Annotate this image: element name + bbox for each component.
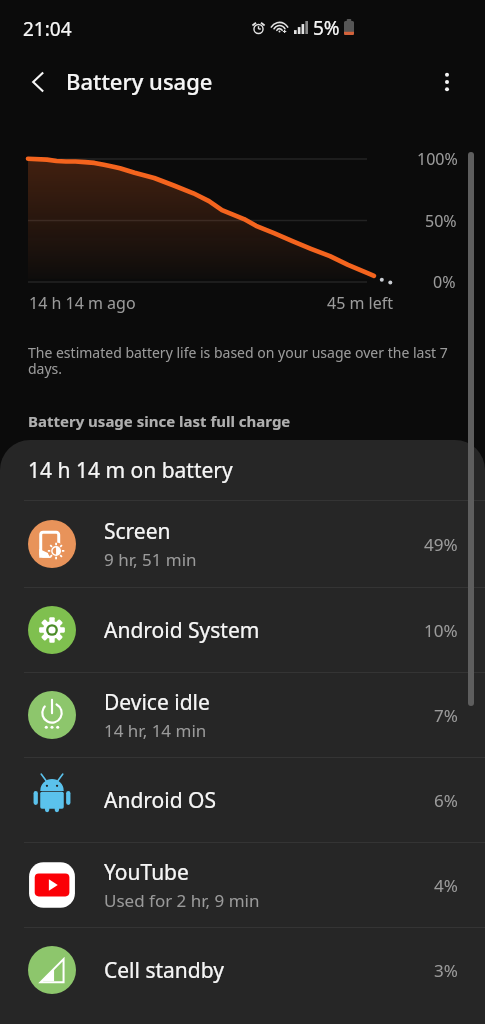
staticText: 3%: [434, 959, 458, 982]
button[interactable]: Cell standby: [0, 928, 485, 1012]
staticText: Cell standby: [104, 956, 224, 985]
staticText: 14 h 14 m on battery: [28, 456, 233, 485]
staticText: 7%: [434, 704, 458, 727]
staticText: Battery usage: [66, 66, 213, 96]
button[interactable]: Device idle: [0, 673, 485, 757]
staticText: 45 m left: [327, 292, 394, 314]
staticText: 0%: [433, 271, 456, 293]
staticText: 10%: [424, 619, 458, 642]
button[interactable]: YouTube: [0, 843, 485, 927]
staticText: Android System: [104, 616, 260, 645]
staticText: Screen: [104, 517, 171, 546]
staticText: Used for 2 hr, 9 min: [104, 889, 260, 912]
button[interactable]: More options: [427, 62, 467, 102]
staticText: 50%: [425, 210, 457, 232]
button[interactable]: Android OS: [0, 758, 485, 842]
staticText: Android OS: [104, 786, 216, 815]
button[interactable]: Navigate up: [18, 62, 58, 102]
staticText: YouTube: [104, 858, 189, 887]
staticText: 100%: [417, 148, 458, 170]
staticText: Device idle: [104, 688, 210, 717]
staticText: 5%: [313, 15, 340, 39]
button[interactable]: Screen: [0, 501, 485, 587]
staticText: 6%: [434, 789, 458, 812]
staticText: 14 hr, 14 min: [104, 719, 207, 742]
staticText: 21:04: [23, 16, 72, 42]
button[interactable]: Android System: [0, 588, 485, 672]
staticText: Battery usage since last full charge: [28, 411, 291, 431]
staticText: 9 hr, 51 min: [104, 548, 197, 571]
staticText: 4%: [434, 874, 458, 897]
staticText: The estimated battery life is based on y…: [28, 343, 460, 378]
staticText: 49%: [424, 533, 458, 556]
staticText: 14 h 14 m ago: [29, 292, 136, 314]
